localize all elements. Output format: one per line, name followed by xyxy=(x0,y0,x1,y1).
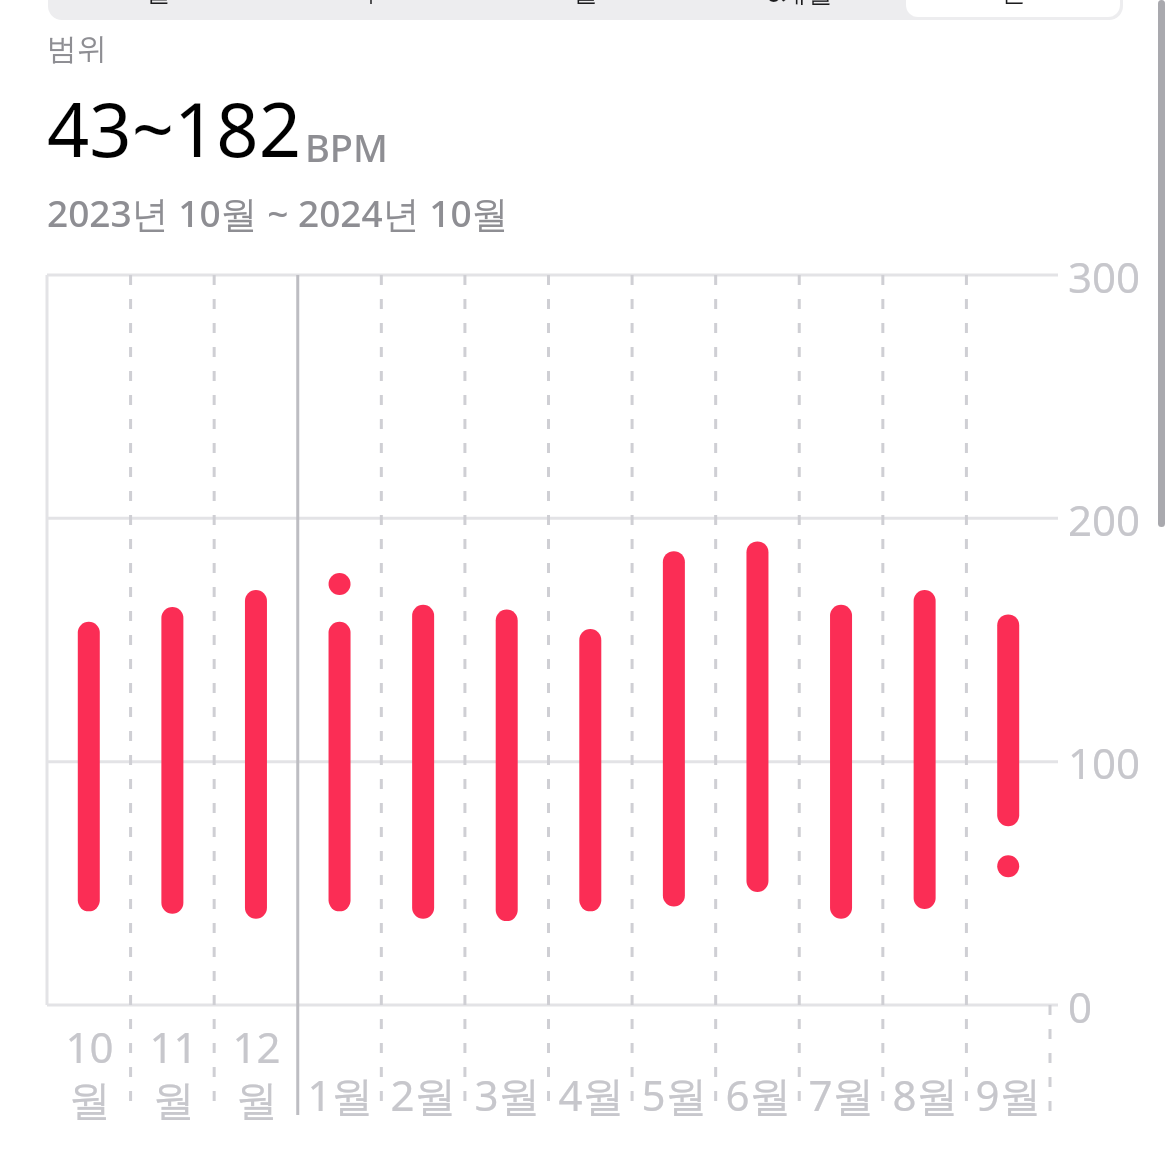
button[interactable]: 년 xyxy=(906,0,1120,17)
staticText: 1월 xyxy=(307,1066,374,1123)
staticText: 200 xyxy=(1068,491,1141,548)
other: Scroll position xyxy=(1158,0,1165,527)
staticText: 12 xyxy=(232,1018,281,1075)
button[interactable]: 월 xyxy=(478,0,692,17)
staticText: 5월 xyxy=(641,1066,708,1123)
staticText: 월 xyxy=(153,1075,195,1128)
staticText: 300 xyxy=(1068,248,1141,305)
staticText: 9월 xyxy=(975,1066,1042,1123)
button[interactable]: 5월 xyxy=(632,1018,716,1148)
button[interactable]: 8월 xyxy=(883,1018,967,1148)
staticText: 월 xyxy=(69,1075,111,1128)
staticText: 2월 xyxy=(390,1066,457,1123)
button[interactable]: 11 xyxy=(131,1018,215,1148)
staticText: 월 xyxy=(572,0,598,9)
staticText: 년 xyxy=(1000,0,1026,9)
button[interactable]: 7월 xyxy=(799,1018,883,1148)
staticText: 11 xyxy=(149,1018,198,1075)
button[interactable]: 6개월 xyxy=(692,0,906,17)
button[interactable]: 4월 xyxy=(549,1018,633,1148)
button[interactable]: 3월 xyxy=(465,1018,549,1148)
staticText: 100 xyxy=(1068,734,1141,791)
button[interactable]: 6월 xyxy=(716,1018,800,1148)
staticText: 10 xyxy=(65,1018,114,1075)
staticText: 일 xyxy=(145,0,171,9)
staticText: 43~182 xyxy=(47,78,301,179)
staticText: 범위 xyxy=(47,30,107,68)
staticText: 8월 xyxy=(892,1066,959,1123)
staticText: 0 xyxy=(1068,978,1093,1035)
staticText: 2023년 10월 ~ 2024년 10월 xyxy=(47,187,509,238)
staticText: 7월 xyxy=(808,1066,875,1123)
staticText: 6개월 xyxy=(766,0,833,10)
staticText: BPM xyxy=(305,121,388,173)
button[interactable]: 2월 xyxy=(381,1018,465,1148)
staticText: 6월 xyxy=(725,1066,792,1123)
staticText: 월 xyxy=(236,1075,278,1128)
staticText: 4월 xyxy=(558,1066,625,1123)
button[interactable]: 1월 xyxy=(298,1018,382,1148)
button[interactable]: 일 xyxy=(51,0,264,17)
button[interactable]: 9월 xyxy=(966,1018,1050,1148)
button[interactable]: 10 xyxy=(47,1018,131,1148)
staticText: 3월 xyxy=(474,1066,541,1123)
button[interactable]: 주 xyxy=(264,0,478,17)
button[interactable]: 12 xyxy=(214,1018,298,1148)
staticText: 주 xyxy=(358,0,384,9)
